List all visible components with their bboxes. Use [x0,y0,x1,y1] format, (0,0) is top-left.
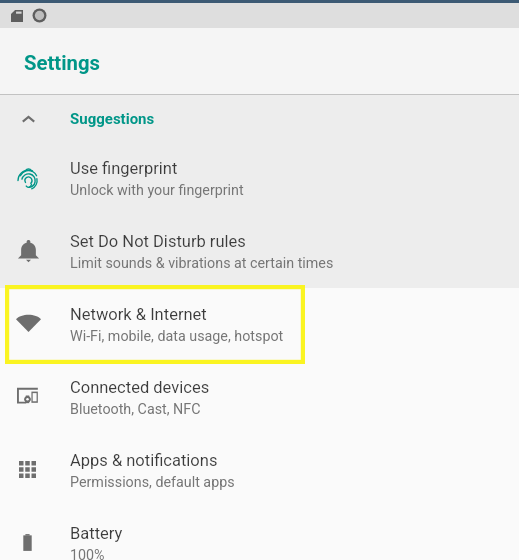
staticText: Set Do Not Disturb rules [70,232,246,251]
button[interactable]: Collapse suggestions [0,95,519,142]
staticText: Use fingerprint [70,159,178,178]
staticText: Settings [24,51,100,75]
button[interactable]: Network & Internet [0,288,519,361]
staticText: Limit sounds & vibrations at certain tim… [70,255,334,272]
other: Collapse suggestions [22,113,35,126]
staticText: Bluetooth, Cast, NFC [70,401,201,418]
staticText: 100% [70,547,105,560]
staticText: Battery [70,524,123,543]
staticText: Permissions, default apps [70,474,235,491]
button[interactable]: Use fingerprint [0,142,519,215]
staticText: Unlock with your fingerprint [70,182,244,199]
staticText: Network & Internet [70,305,207,324]
button[interactable]: Set Do Not Disturb rules [0,215,519,288]
button[interactable]: Apps & notifications [0,434,519,507]
staticText: Suggestions [70,110,155,128]
staticText: Apps & notifications [70,451,218,470]
button[interactable]: Battery [0,507,519,560]
staticText: Wi-Fi, mobile, data usage, hotspot [70,328,284,345]
staticText: Connected devices [70,378,210,397]
button[interactable]: Connected devices [0,361,519,434]
